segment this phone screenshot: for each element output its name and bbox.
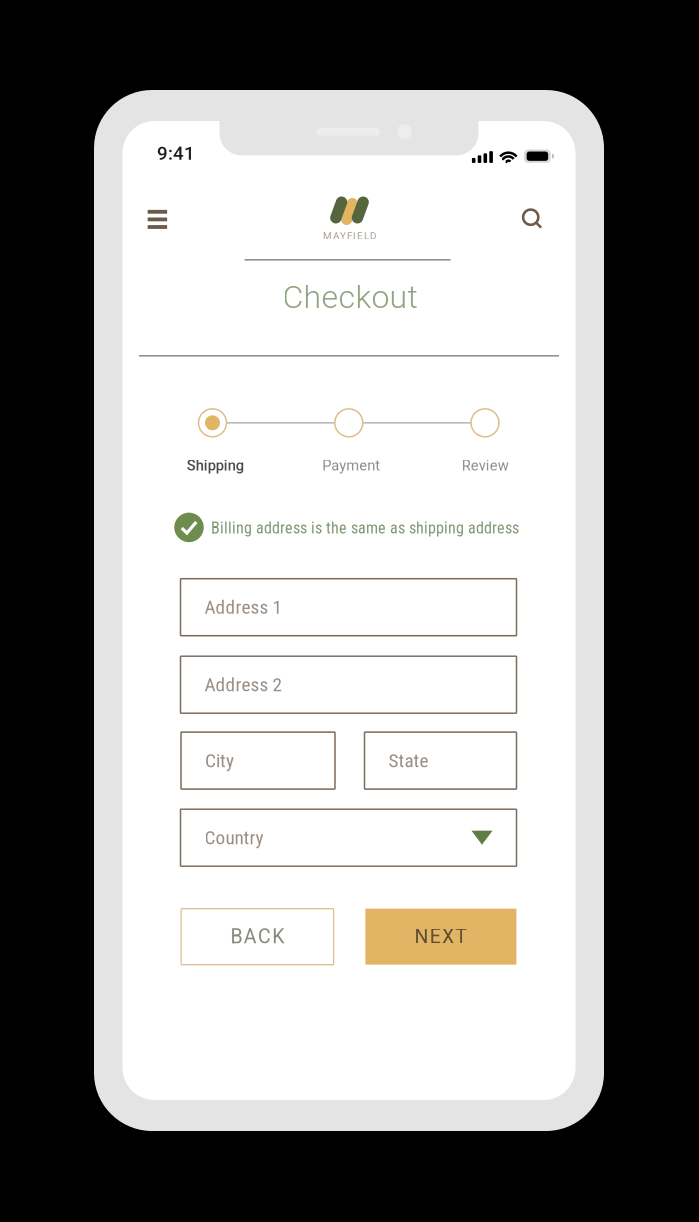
staticText: Payment [322, 457, 380, 474]
button[interactable]: Menu [135, 197, 179, 241]
button[interactable]: BACK [181, 909, 334, 965]
staticText: City [205, 749, 234, 772]
staticText: Shipping [187, 457, 244, 474]
button[interactable]: NEXT [365, 909, 516, 965]
button[interactable]: Address 2 [180, 656, 516, 713]
staticText: M A Y F I E L D [323, 230, 376, 242]
staticText: Checkout [282, 278, 417, 316]
button[interactable]: Search [510, 196, 554, 240]
staticText: 9:41 [157, 142, 195, 164]
staticText: NEXT [414, 925, 467, 948]
button[interactable]: Mayfield home [294, 194, 404, 242]
staticText: Address 1 [204, 596, 281, 618]
button[interactable]: Country [180, 809, 516, 866]
staticText: Review [462, 457, 509, 474]
staticText: Billing address is the same as shipping … [211, 519, 519, 537]
button[interactable]: State [364, 732, 516, 789]
staticText: Address 2 [204, 673, 281, 696]
button[interactable]: Address 1 [180, 579, 516, 636]
staticText: BACK [230, 925, 284, 948]
staticText: Country [204, 826, 263, 849]
staticText: State [388, 749, 428, 772]
button[interactable]: City [181, 732, 335, 789]
